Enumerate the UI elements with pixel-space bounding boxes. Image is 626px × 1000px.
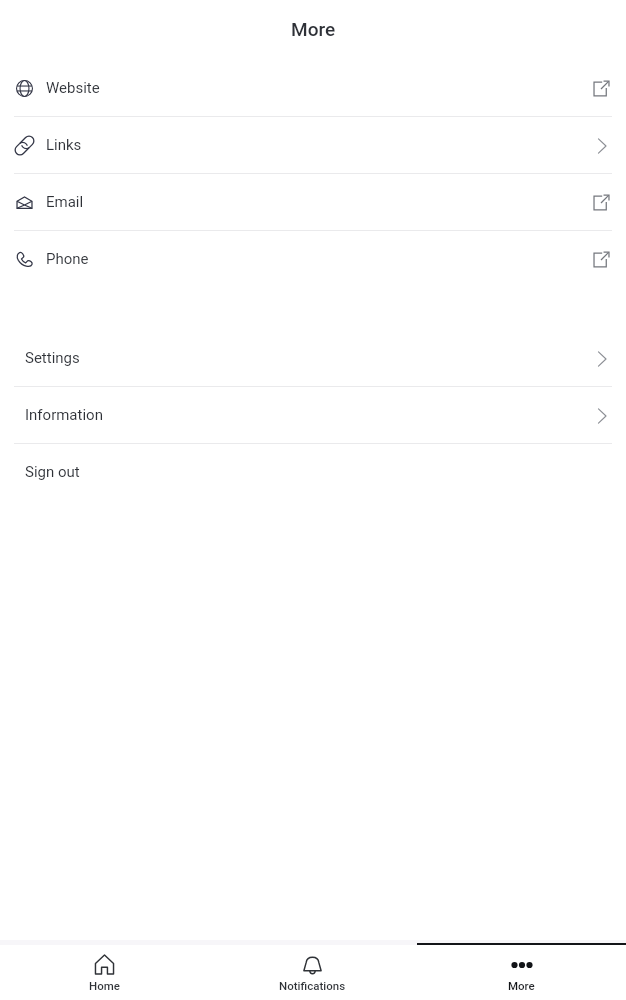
staticText: Notifications: [279, 979, 346, 992]
other: Open: [594, 138, 610, 154]
button[interactable]: Home: [0, 945, 208, 1000]
staticText: Email: [46, 193, 84, 211]
button[interactable]: Phone: [0, 231, 626, 287]
other: Open in new: [593, 80, 610, 97]
button[interactable]: Settings: [0, 330, 626, 386]
button[interactable]: Website: [0, 60, 626, 116]
staticText: Phone: [46, 250, 89, 268]
other: Email: [16, 194, 33, 211]
other: Open: [594, 408, 610, 424]
staticText: Links: [46, 136, 82, 154]
button[interactable]: Email: [0, 174, 626, 230]
other: Links: [16, 137, 33, 154]
staticText: More: [291, 18, 336, 40]
other: Phone: [16, 251, 33, 268]
staticText: More: [508, 979, 535, 992]
button[interactable]: Information: [0, 387, 626, 443]
staticText: Settings: [25, 349, 80, 367]
button[interactable]: Links: [0, 117, 626, 173]
other: Website: [16, 80, 33, 97]
button[interactable]: Notifications: [208, 945, 417, 1000]
button[interactable]: Sign out: [0, 444, 626, 500]
staticText: Sign out: [25, 463, 80, 481]
other: Open in new: [593, 251, 610, 268]
staticText: Information: [25, 406, 103, 424]
other: Open: [594, 351, 610, 367]
button[interactable]: More: [417, 945, 626, 1000]
staticText: Website: [46, 79, 100, 97]
other: Open in new: [593, 194, 610, 211]
staticText: Home: [89, 979, 120, 992]
